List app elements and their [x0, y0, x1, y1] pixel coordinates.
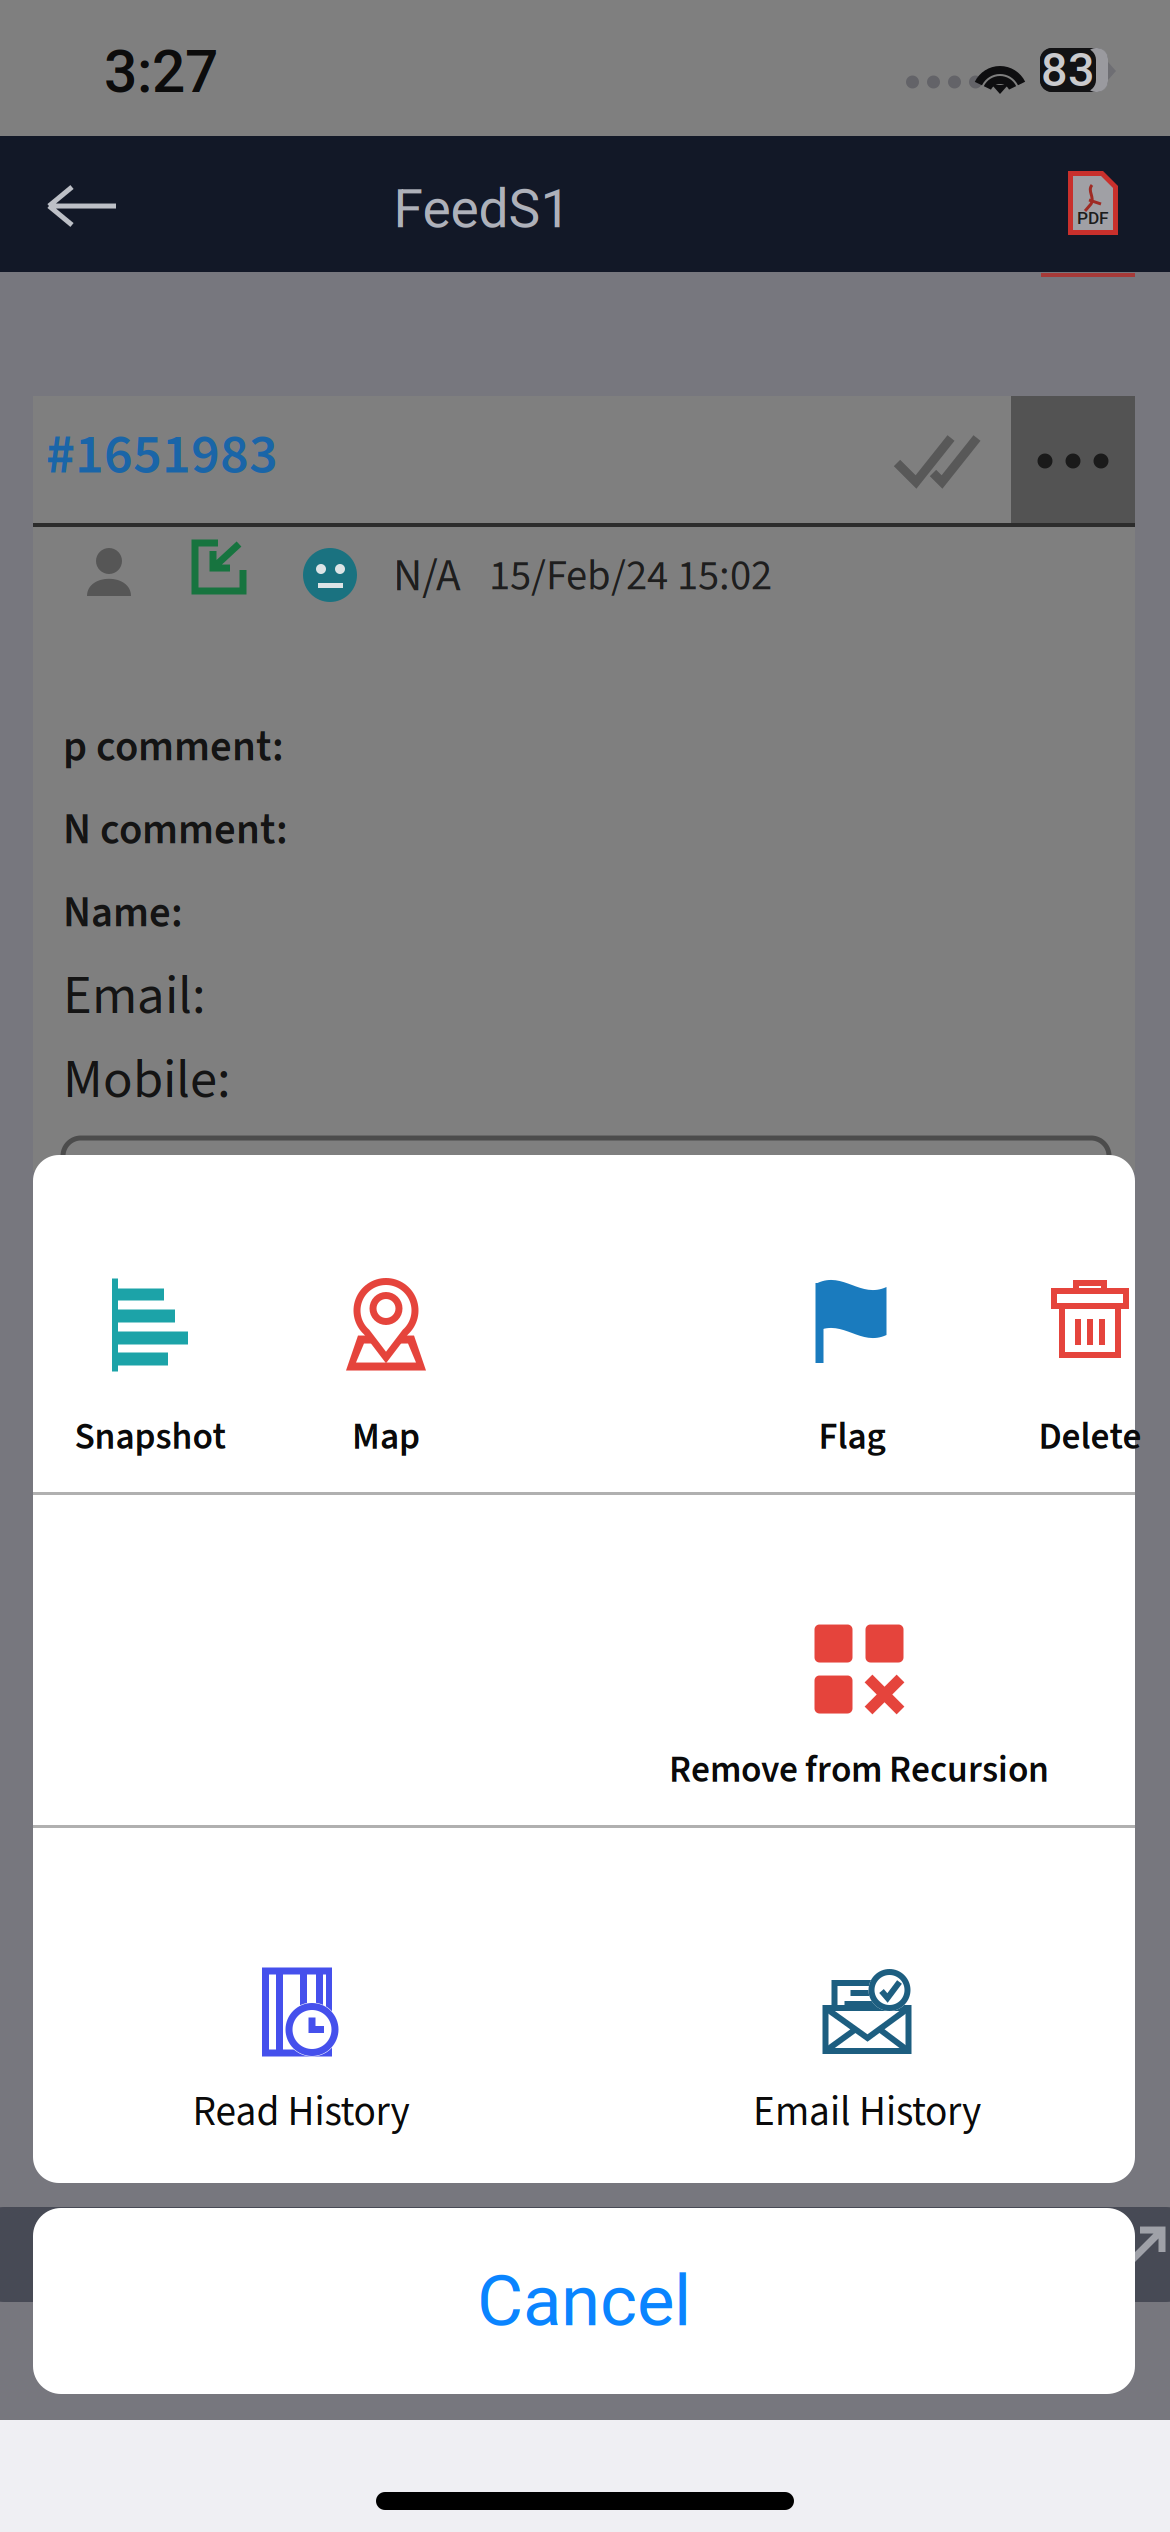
staticText: p comment: — [63, 717, 284, 777]
staticText: Flag — [818, 1410, 885, 1464]
staticText: 83 — [1041, 43, 1095, 97]
staticText: Delete — [1038, 1410, 1141, 1464]
staticText: PDF — [1077, 208, 1109, 228]
staticText: Email History — [753, 2083, 981, 2141]
staticText: #1651983 — [46, 415, 278, 495]
button[interactable]: Read History — [0, 0, 1170, 2532]
button[interactable]: Back — [22, 158, 146, 254]
staticText: Cancel — [477, 2260, 691, 2342]
staticText: 3:27 — [104, 38, 218, 106]
button[interactable]: Export PDF — [1067, 170, 1119, 236]
button[interactable]: Flag — [0, 0, 1170, 2532]
staticText: Name: — [63, 883, 183, 943]
button[interactable]: Snapshot — [0, 0, 1170, 2532]
staticText: FeedS1 — [393, 178, 570, 240]
button[interactable]: Delete — [0, 0, 1170, 2532]
staticText: Map — [352, 1410, 420, 1464]
staticText: Email: — [63, 957, 206, 1035]
staticText: 15/Feb/24 15:02 — [489, 546, 772, 606]
staticText: Read History — [192, 2083, 409, 2141]
button[interactable]: Map — [0, 0, 1170, 2532]
staticText: N comment: — [63, 800, 288, 860]
staticText: Remove from Recursion — [669, 1743, 1049, 1797]
staticText: N/A — [393, 544, 461, 608]
button[interactable]: Remove from Recursion — [0, 0, 1170, 2532]
button[interactable]: Cancel — [0, 0, 1170, 2532]
button[interactable]: Email History — [0, 0, 1170, 2532]
staticText: Snapshot — [74, 1410, 225, 1464]
button[interactable]: More options — [1011, 396, 1135, 526]
staticText: Mobile: — [63, 1041, 231, 1119]
